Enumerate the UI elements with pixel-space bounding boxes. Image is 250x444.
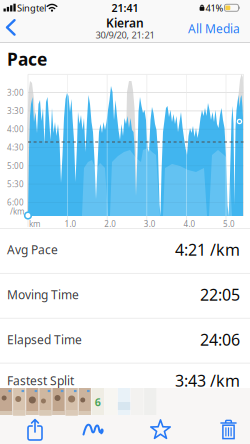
staticText: 41% [205, 2, 223, 14]
staticText: 3:00 [7, 87, 24, 98]
staticText: Moving Time [7, 286, 79, 302]
staticText: 2.0 [104, 219, 116, 229]
staticText: 3.0 [144, 219, 156, 229]
staticText: 21:41 [111, 1, 138, 15]
staticText: 5:30 [7, 179, 24, 189]
staticText: 6 [95, 395, 101, 409]
staticText: 3:43 /km [175, 370, 240, 391]
staticText: Fastest Split [7, 372, 74, 388]
staticText: 22:05 [200, 284, 240, 305]
staticText: 6:00 [7, 197, 24, 208]
button[interactable] [149, 418, 171, 440]
staticText: 4.0 [183, 219, 195, 229]
staticText: Kieran [106, 15, 144, 31]
staticText: 4:21 /km [175, 239, 240, 260]
button[interactable]: 6 [0, 388, 157, 415]
button[interactable]: All Media [174, 18, 240, 38]
button[interactable] [219, 419, 237, 440]
staticText: Singtel [17, 2, 46, 14]
button[interactable] [4, 18, 18, 37]
staticText: 1.0 [65, 219, 77, 229]
staticText: 30/9/20, 21:21 [95, 29, 154, 41]
staticText: All Media [188, 20, 240, 36]
staticText: Avg Pace [7, 241, 58, 257]
staticText: 5.0 [223, 219, 235, 229]
staticText: 5:00 [7, 160, 24, 171]
staticText: 3:30 [7, 106, 24, 116]
staticText: km [29, 219, 40, 229]
staticText: 4:00 [7, 124, 24, 134]
button[interactable] [82, 420, 104, 437]
button[interactable] [25, 418, 45, 442]
staticText: 24:06 [200, 329, 240, 350]
staticText: Pace [7, 47, 47, 70]
staticText: Elapsed Time [7, 331, 82, 347]
staticText: /km [10, 206, 24, 217]
staticText: 4:30 [7, 142, 24, 153]
